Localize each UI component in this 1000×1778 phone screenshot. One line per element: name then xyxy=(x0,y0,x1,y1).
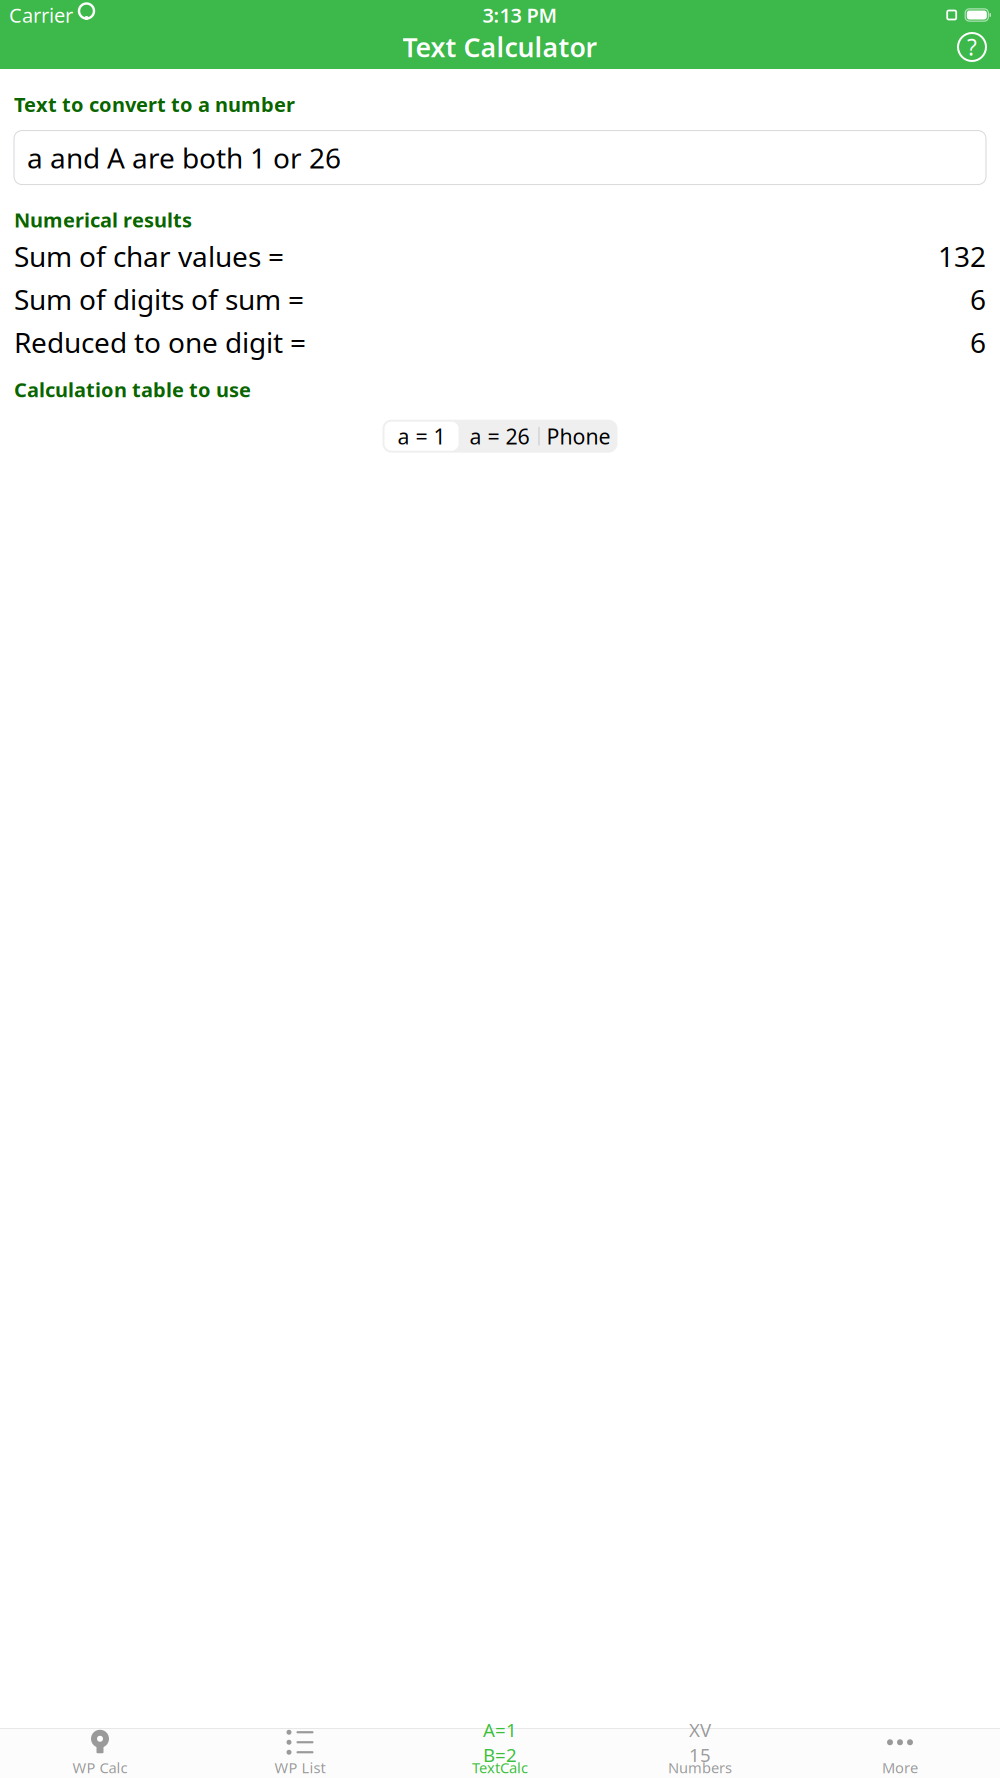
staticText: Carrier xyxy=(9,2,73,28)
button[interactable]: More xyxy=(800,1729,1000,1778)
staticText: XV xyxy=(689,1717,711,1742)
staticText: 6 xyxy=(970,323,986,361)
staticText: Sum of digits of sum = xyxy=(14,280,304,318)
button[interactable]: A=1 xyxy=(400,1729,600,1778)
staticText: WP List xyxy=(274,1758,325,1777)
button[interactable]: XV xyxy=(600,1729,800,1778)
staticText: 3:13 PM xyxy=(483,2,558,28)
staticText: More xyxy=(882,1758,918,1777)
staticText: a and A are both 1 or 26 xyxy=(27,139,341,176)
staticText: Calculation table to use xyxy=(14,376,251,403)
staticText: Numerical results xyxy=(14,207,192,233)
staticText: Sum of char values = xyxy=(14,237,284,275)
button[interactable]: Help xyxy=(950,25,994,69)
button[interactable]: a = 1 xyxy=(384,422,458,451)
staticText: A=1 xyxy=(483,1717,517,1742)
staticText: 15 xyxy=(689,1742,711,1767)
staticText: 6 xyxy=(970,280,986,318)
staticText: B=2 xyxy=(483,1742,517,1767)
staticText: TextCalc xyxy=(472,1758,528,1777)
staticText: Text to convert to a number xyxy=(14,91,295,118)
staticText: Phone xyxy=(546,422,610,450)
staticText: 132 xyxy=(938,237,986,275)
button[interactable]: Phone xyxy=(539,420,617,453)
button[interactable]: WP List xyxy=(200,1729,400,1778)
button[interactable]: a = 26 xyxy=(460,420,538,453)
button[interactable]: a and A are both 1 or 26 xyxy=(14,131,986,185)
staticText: ? xyxy=(967,32,977,62)
staticText: Text Calculator xyxy=(402,29,597,65)
button[interactable]: WP Calc xyxy=(0,1729,200,1778)
staticText: Reduced to one digit = xyxy=(14,323,306,361)
staticText: Numbers xyxy=(668,1758,732,1777)
staticText: WP Calc xyxy=(72,1758,127,1777)
staticText: a = 1 xyxy=(397,422,445,450)
staticText: a = 26 xyxy=(469,422,529,450)
